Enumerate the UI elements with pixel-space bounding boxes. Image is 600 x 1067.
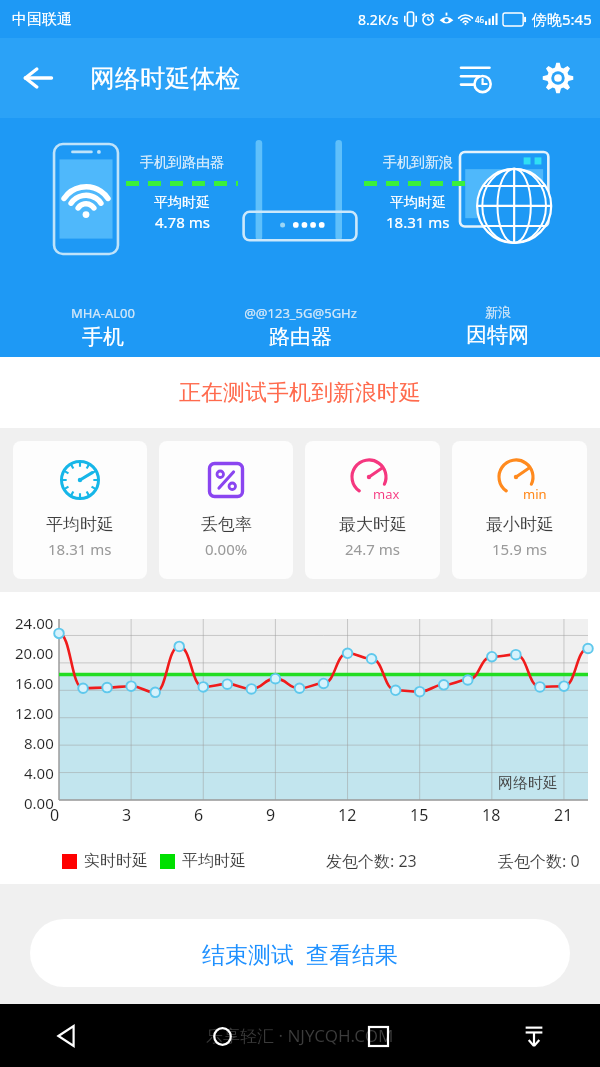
staticText: 中国联通 bbox=[12, 10, 72, 29]
staticText: 46 bbox=[475, 14, 485, 25]
staticText: max bbox=[373, 485, 400, 503]
staticText: 新浪 bbox=[485, 304, 511, 320]
staticText: 24.7 ms bbox=[345, 539, 400, 559]
button[interactable]: min bbox=[452, 441, 587, 579]
staticText: 8.2K/s bbox=[358, 10, 399, 29]
staticText: 8.00 bbox=[24, 733, 54, 753]
staticText: 18 bbox=[482, 804, 501, 826]
staticText: 18.31 ms bbox=[386, 212, 450, 232]
button[interactable]: History bbox=[448, 50, 504, 106]
button[interactable]: 平均时延 bbox=[13, 441, 147, 579]
staticText: 6 bbox=[194, 804, 204, 826]
staticText: 丢包率 bbox=[201, 514, 252, 535]
staticText: 21 bbox=[554, 804, 573, 826]
staticText: 手机 bbox=[82, 324, 124, 350]
staticText: 最大时延 bbox=[339, 514, 407, 535]
staticText: 丢包个数: 0 bbox=[498, 850, 580, 872]
staticText: MHA-AL00 bbox=[71, 304, 135, 322]
staticText: 手机到路由器 bbox=[140, 154, 224, 172]
staticText: 路由器 bbox=[269, 324, 332, 350]
staticText: 平均时延 bbox=[390, 194, 446, 212]
staticText: 0.00% bbox=[205, 539, 248, 559]
staticText: 15.9 ms bbox=[492, 539, 547, 559]
staticText: 3 bbox=[122, 804, 132, 826]
staticText: 18.31 ms bbox=[48, 539, 112, 559]
staticText: 网络时延 bbox=[498, 774, 558, 793]
staticText: 24.00 bbox=[15, 613, 54, 633]
staticText: 0.00 bbox=[24, 793, 54, 813]
staticText: 12.00 bbox=[15, 703, 54, 723]
staticText: 9 bbox=[266, 804, 276, 826]
staticText: 16.00 bbox=[15, 673, 54, 693]
button[interactable]: 结束测试 查看结果 bbox=[30, 919, 570, 987]
staticText: 实时时延 bbox=[84, 851, 148, 871]
staticText: 正在测试手机到新浪时延 bbox=[179, 379, 421, 407]
staticText: 20.00 bbox=[15, 643, 54, 663]
staticText: 乐享轻汇 · NJYCQH.COM bbox=[206, 1024, 394, 1047]
staticText: 手机到新浪 bbox=[383, 154, 453, 172]
button[interactable]: Hide navigation bar bbox=[512, 1014, 556, 1058]
staticText: 发包个数: 23 bbox=[326, 850, 417, 872]
staticText: 4.00 bbox=[24, 763, 54, 783]
staticText: 15 bbox=[410, 804, 429, 826]
staticText: 最小时延 bbox=[486, 514, 554, 535]
staticText: 网络时延体检 bbox=[90, 63, 240, 94]
staticText: @@123_5G@5GHz bbox=[244, 304, 357, 322]
staticText: 结束测试 查看结果 bbox=[202, 938, 398, 969]
button[interactable]: max bbox=[305, 441, 440, 579]
staticText: 0 bbox=[50, 804, 60, 826]
staticText: min bbox=[523, 485, 547, 503]
button[interactable]: 丢包率 bbox=[159, 441, 293, 579]
staticText: 平均时延 bbox=[182, 851, 246, 871]
button[interactable]: Recent apps bbox=[356, 1014, 400, 1058]
staticText: 因特网 bbox=[466, 322, 529, 348]
button[interactable]: Back bbox=[44, 1014, 88, 1058]
button[interactable]: Back bbox=[10, 50, 66, 106]
staticText: 平均时延 bbox=[154, 194, 210, 212]
button[interactable]: Settings bbox=[530, 50, 586, 106]
staticText: 4.78 ms bbox=[155, 212, 210, 232]
staticText: 平均时延 bbox=[46, 514, 114, 535]
staticText: 12 bbox=[338, 804, 357, 826]
staticText: 傍晚5:45 bbox=[532, 9, 592, 29]
button[interactable]: Home bbox=[200, 1014, 244, 1058]
